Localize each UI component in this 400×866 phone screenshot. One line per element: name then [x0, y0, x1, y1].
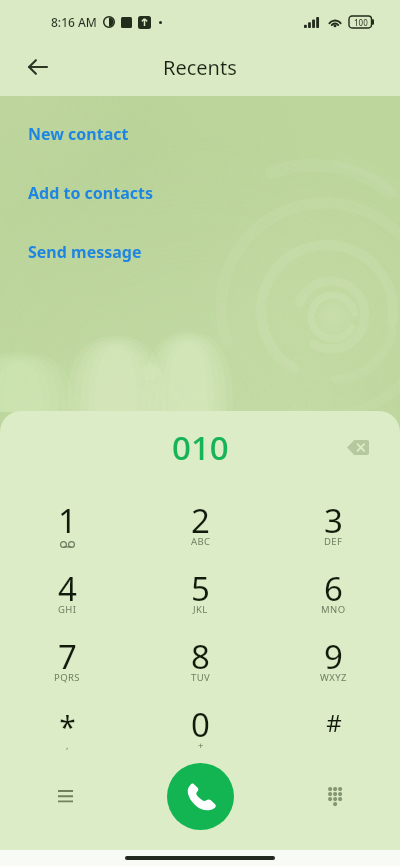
staticText: 0 — [191, 702, 210, 747]
button[interactable]: 4 — [0, 569, 134, 637]
staticText: 6 — [324, 566, 343, 611]
button[interactable]: 9 — [267, 637, 400, 705]
button[interactable]: Add to contacts — [0, 182, 400, 204]
button[interactable]: 6 — [267, 569, 400, 637]
staticText: JKL — [193, 603, 208, 616]
staticText: 010 — [172, 425, 229, 470]
staticText: 7 — [58, 634, 77, 679]
staticText: New contact — [28, 123, 129, 145]
button[interactable]: # — [267, 705, 400, 773]
staticText: 5 — [191, 566, 210, 611]
button[interactable]: 3 — [267, 501, 400, 569]
staticText: Send message — [28, 241, 142, 263]
staticText: , — [66, 739, 69, 752]
staticText: 3 — [324, 498, 343, 543]
staticText: 8:16 AM — [51, 14, 97, 30]
button[interactable]: Menu — [43, 774, 87, 818]
staticText: Add to contacts — [28, 182, 153, 204]
button[interactable]: Call — [167, 763, 234, 830]
button[interactable]: Keypad — [313, 774, 357, 818]
staticText: Recents — [163, 54, 237, 81]
button[interactable]: 2 — [134, 501, 267, 569]
staticText: MNO — [321, 603, 346, 616]
button[interactable]: 8 — [134, 637, 267, 705]
button[interactable]: Backspace — [340, 429, 376, 465]
staticText: DEF — [324, 535, 343, 548]
staticText: 2 — [191, 498, 210, 543]
button[interactable]: 1 — [0, 501, 134, 569]
button[interactable]: New contact — [0, 123, 400, 145]
button[interactable]: 5 — [134, 569, 267, 637]
staticText: # — [326, 706, 342, 739]
staticText: * — [59, 706, 76, 747]
staticText: 1 — [58, 498, 77, 543]
staticText: 8 — [191, 634, 210, 679]
button[interactable]: Back — [18, 47, 58, 87]
button[interactable]: Send message — [0, 241, 400, 263]
staticText: GHI — [58, 603, 77, 616]
staticText: 100 — [354, 17, 368, 28]
staticText: PQRS — [54, 671, 80, 684]
staticText: 9 — [324, 634, 343, 679]
button[interactable]: 0 — [134, 705, 267, 773]
staticText: WXYZ — [320, 671, 347, 684]
button[interactable]: * — [0, 705, 134, 773]
button[interactable]: 7 — [0, 637, 134, 705]
staticText: 4 — [58, 566, 77, 611]
staticText: + — [198, 739, 204, 752]
staticText: ABC — [191, 535, 211, 548]
staticText: TUV — [191, 671, 211, 684]
